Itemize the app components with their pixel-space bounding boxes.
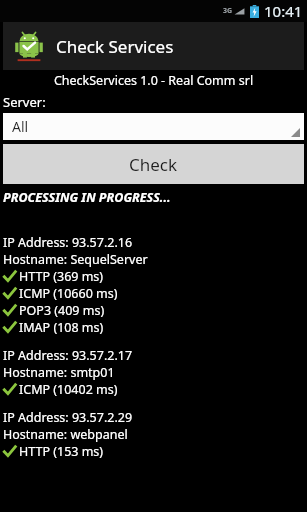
button[interactable]: Check: [3, 144, 304, 184]
staticText: Check: [129, 153, 178, 176]
staticText: Server:: [3, 93, 46, 111]
staticText: HTTP (369 ms): [19, 268, 104, 285]
staticText: ICMP (10402 ms): [19, 381, 118, 398]
staticText: Check Services: [56, 35, 174, 58]
staticText: Hostname: smtp01: [3, 364, 115, 381]
staticText: IP Address: 93.57.2.16: [3, 234, 133, 251]
staticText: Hostname: webpanel: [3, 426, 128, 443]
staticText: IP Address: 93.57.2.29: [3, 409, 133, 426]
staticText: IMAP (108 ms): [19, 319, 104, 336]
staticText: PROCESSING IN PROGRESS...: [3, 189, 171, 206]
staticText: CheckServices 1.0 - Real Comm srl: [0, 72, 307, 89]
staticText: IP Address: 93.57.2.17: [3, 347, 133, 364]
staticText: HTTP (153 ms): [19, 443, 104, 460]
staticText: Hostname: SequelServer: [3, 251, 148, 268]
button[interactable]: All: [3, 113, 304, 140]
staticText: ICMP (10660 ms): [19, 285, 118, 302]
staticText: All: [12, 117, 29, 136]
staticText: 10:41: [264, 1, 303, 21]
staticText: POP3 (409 ms): [19, 302, 105, 319]
staticText: 3G: [223, 6, 233, 16]
